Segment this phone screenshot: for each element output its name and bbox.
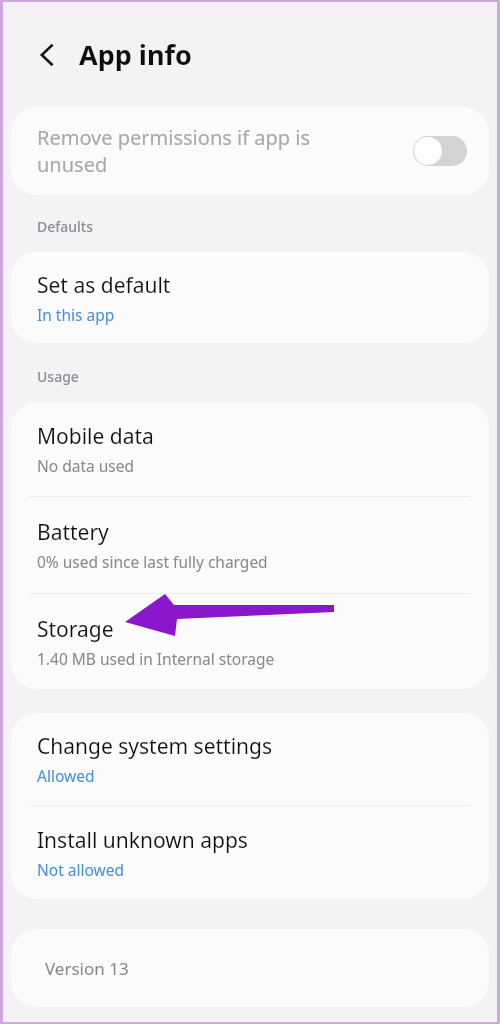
staticText: Defaults	[37, 217, 93, 236]
staticText: In this app	[37, 304, 115, 325]
button[interactable]: Set as default	[11, 252, 489, 343]
button[interactable]: Remove permissions toggle	[413, 136, 467, 166]
button[interactable]: Install unknown apps	[11, 806, 489, 899]
staticText: Battery	[37, 518, 109, 547]
staticText: Allowed	[37, 765, 95, 786]
staticText: Not allowed	[37, 859, 125, 880]
staticText: 0% used since last fully charged	[37, 551, 268, 572]
button[interactable]: Change system settings	[11, 713, 489, 805]
staticText: Usage	[37, 367, 79, 386]
button[interactable]: Battery	[11, 497, 489, 593]
button[interactable]: Mobile data	[11, 402, 489, 496]
staticText: Change system settings	[37, 732, 273, 761]
button[interactable]: Version 13	[11, 929, 489, 1007]
staticText: Storage	[37, 615, 114, 644]
staticText: Version 13	[45, 957, 129, 980]
button[interactable]: Remove permissions if app is unused	[11, 107, 489, 195]
button[interactable]: Storage	[11, 594, 489, 689]
staticText: Set as default	[37, 271, 171, 300]
staticText: Mobile data	[37, 422, 154, 451]
staticText: Install unknown apps	[37, 826, 248, 855]
staticText: 1.40 MB used in Internal storage	[37, 648, 275, 669]
staticText: App info	[79, 36, 192, 73]
staticText: No data used	[37, 455, 135, 476]
staticText: Remove permissions if app is unused	[37, 124, 401, 178]
button[interactable]: Back	[25, 33, 69, 77]
